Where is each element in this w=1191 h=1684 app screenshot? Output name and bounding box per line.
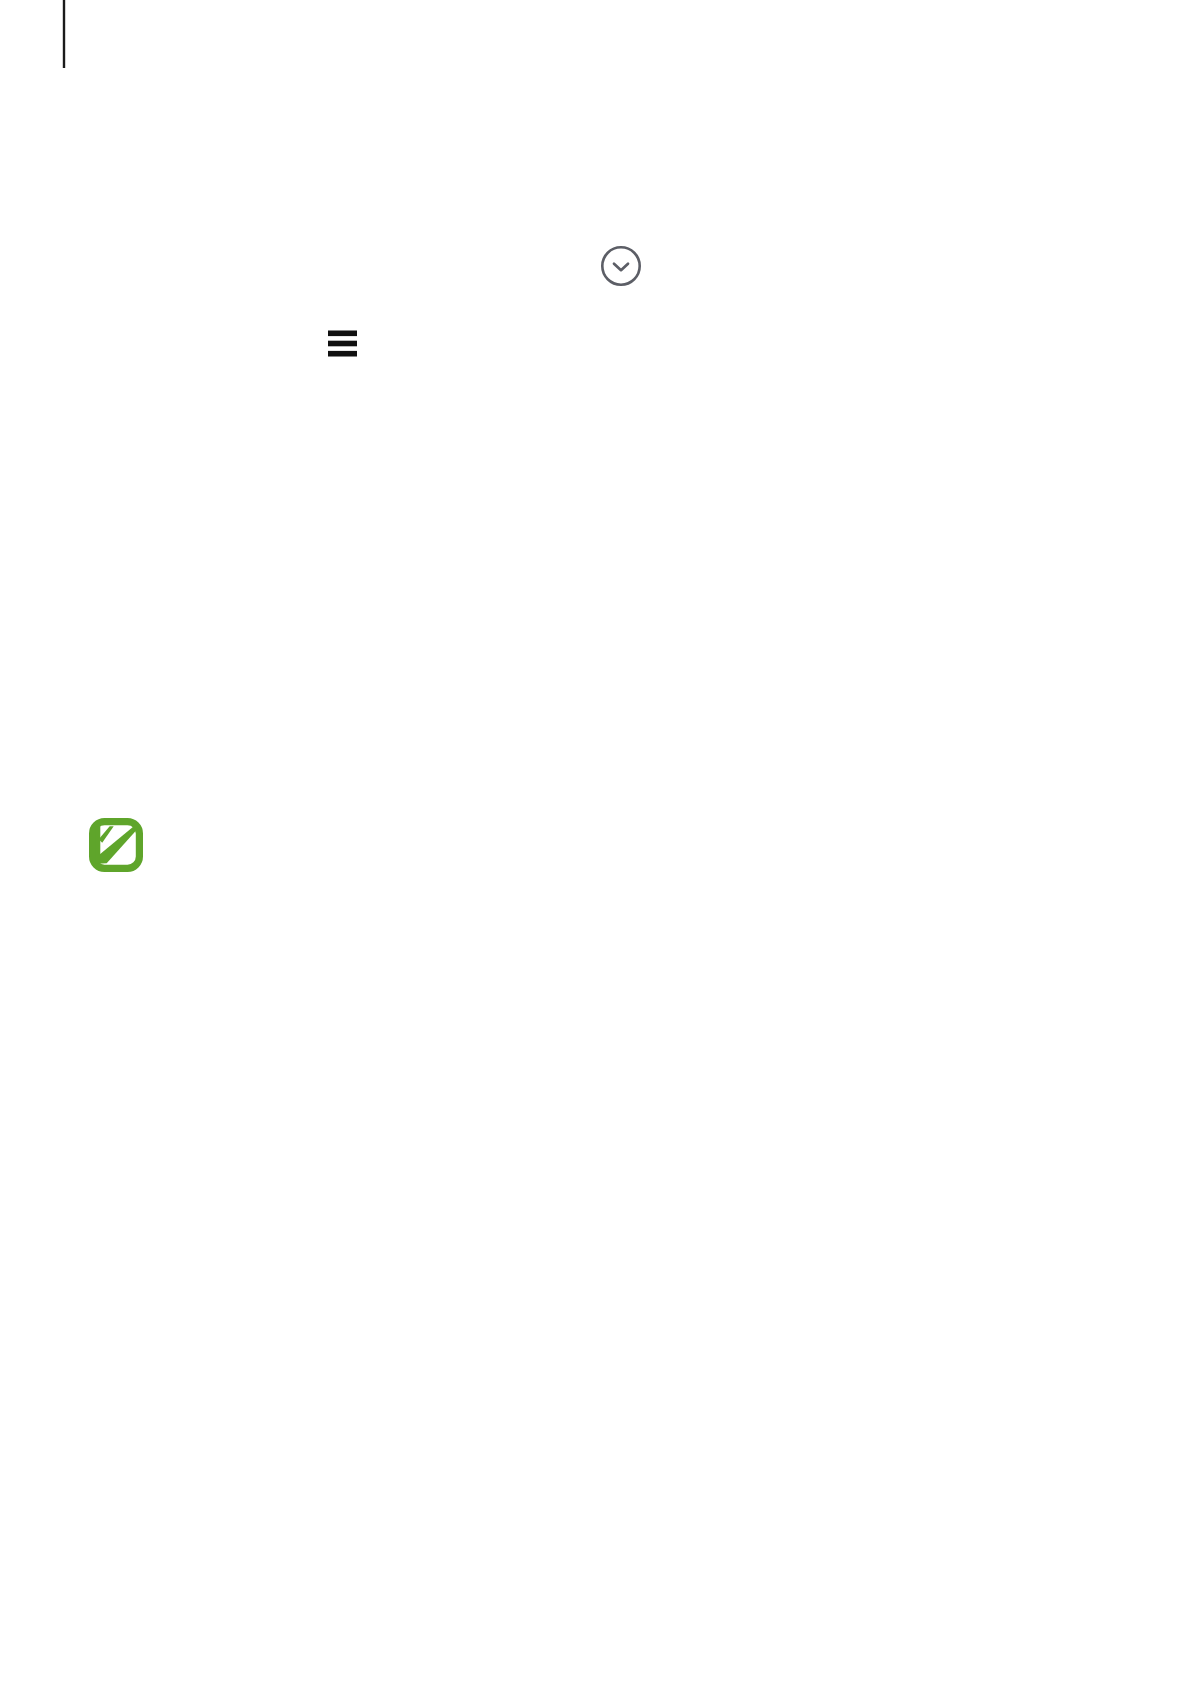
button[interactable]: Expand (597, 242, 645, 290)
button[interactable]: Notes (84, 813, 148, 877)
button[interactable]: Menu (316, 319, 370, 369)
